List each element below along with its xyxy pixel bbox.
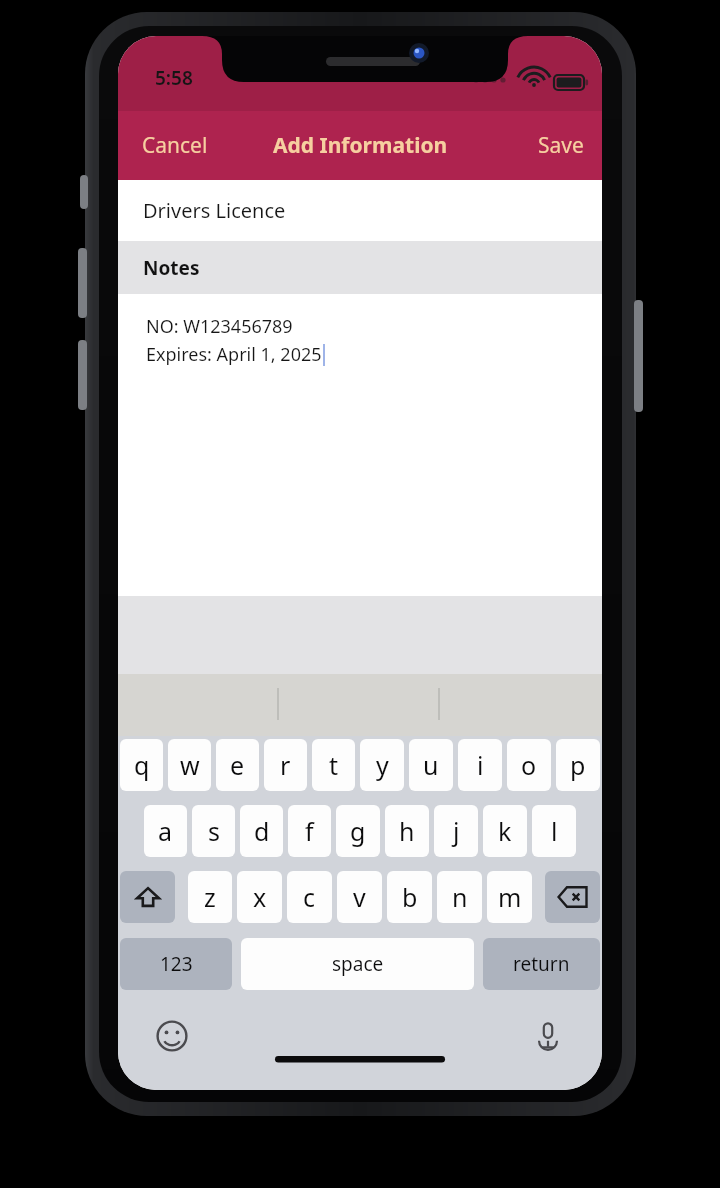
button[interactable]: j — [434, 805, 478, 857]
staticText: y — [376, 748, 389, 782]
staticText: g — [350, 814, 366, 848]
button[interactable]: a — [144, 805, 187, 857]
staticText: 123 — [160, 951, 193, 977]
staticText: l — [551, 814, 558, 848]
button[interactable]: v — [337, 871, 382, 923]
staticText: h — [399, 814, 415, 848]
button[interactable]: NO: W123456789 — [118, 294, 602, 596]
button[interactable]: f — [288, 805, 331, 857]
button[interactable]: l — [532, 805, 576, 857]
staticText: t — [329, 748, 339, 782]
button[interactable]: m — [487, 871, 532, 923]
staticText: 5:58 — [155, 65, 193, 91]
button[interactable]: o — [507, 739, 551, 791]
button[interactable]: 123 — [120, 938, 232, 990]
staticText: m — [498, 880, 522, 914]
staticText: j — [453, 814, 460, 848]
button[interactable]: d — [240, 805, 283, 857]
button[interactable]: s — [192, 805, 235, 857]
button[interactable]: return — [483, 938, 600, 990]
button[interactable]: i — [458, 739, 502, 791]
button[interactable]: g — [336, 805, 380, 857]
button[interactable]: t — [312, 739, 355, 791]
staticText: u — [423, 748, 439, 782]
button[interactable]: Cancel — [118, 121, 222, 170]
staticText: z — [204, 880, 216, 914]
button[interactable]: n — [437, 871, 482, 923]
button[interactable]: c — [287, 871, 332, 923]
button[interactable]: Save — [524, 121, 602, 170]
button[interactable]: y — [360, 739, 404, 791]
button[interactable]: Shift — [120, 871, 175, 923]
staticText: s — [208, 814, 220, 848]
staticText: Expires: April 1, 2025 — [146, 342, 322, 367]
button[interactable]: x — [237, 871, 282, 923]
button[interactable]: r — [264, 739, 307, 791]
button[interactable]: Dictation — [528, 1016, 568, 1056]
staticText: v — [353, 880, 366, 914]
button[interactable]: Drivers Licence — [118, 180, 602, 241]
button[interactable]: Emoji keyboard — [152, 1016, 192, 1056]
staticText: return — [513, 951, 570, 977]
button[interactable]: z — [188, 871, 232, 923]
staticText: space — [332, 951, 384, 977]
button[interactable]: b — [387, 871, 432, 923]
staticText: Save — [538, 131, 584, 160]
staticText: e — [230, 748, 245, 782]
staticText: b — [402, 880, 418, 914]
staticText: i — [477, 748, 484, 782]
staticText: Drivers Licence — [143, 197, 286, 224]
button[interactable]: w — [168, 739, 211, 791]
staticText: k — [498, 814, 512, 848]
staticText: p — [570, 748, 586, 782]
staticText: Add Information — [273, 131, 448, 160]
staticText: x — [253, 880, 267, 914]
staticText: w — [180, 748, 200, 782]
staticText: c — [303, 880, 316, 914]
staticText: f — [305, 814, 314, 848]
staticText: n — [452, 880, 468, 914]
button[interactable]: Backspace — [545, 871, 600, 923]
staticText: o — [521, 748, 537, 782]
staticText: NO: W123456789 — [146, 314, 293, 339]
button[interactable]: p — [556, 739, 600, 791]
button[interactable]: h — [385, 805, 429, 857]
staticText: r — [280, 748, 291, 782]
button[interactable]: q — [120, 739, 163, 791]
button[interactable]: u — [409, 739, 453, 791]
staticText: d — [254, 814, 270, 848]
staticText: Cancel — [142, 131, 208, 160]
button[interactable]: k — [483, 805, 527, 857]
staticText: Notes — [143, 255, 200, 281]
staticText: q — [134, 748, 150, 782]
staticText: a — [158, 814, 173, 848]
button[interactable]: space — [241, 938, 474, 990]
button[interactable]: e — [216, 739, 259, 791]
